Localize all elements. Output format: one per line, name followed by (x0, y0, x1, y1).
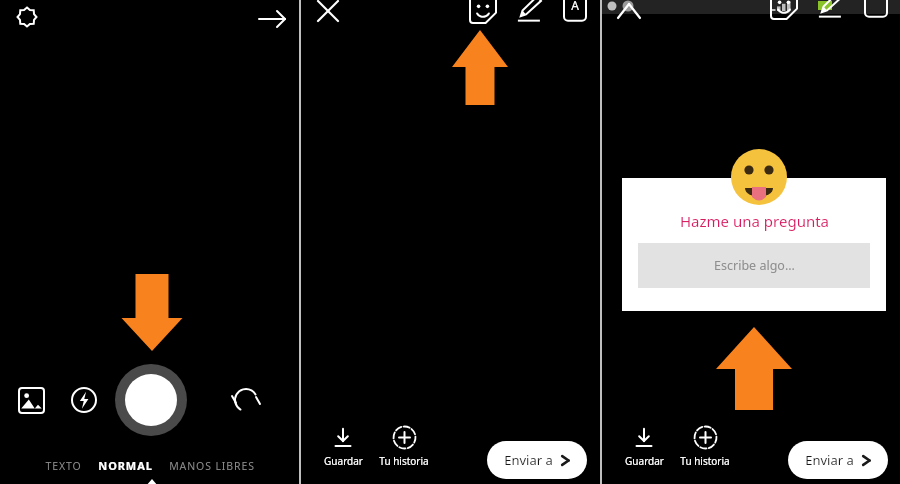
button[interactable]: Tu historia (672, 425, 738, 468)
staticText: Escribe algo... (714, 257, 795, 274)
button[interactable]: Capture (115, 364, 187, 436)
staticText: Hazme una pregunta (680, 211, 829, 231)
button[interactable]: Flash (66, 382, 102, 418)
staticText: Guardar (625, 454, 664, 468)
button[interactable]: Close (311, 0, 345, 28)
button[interactable]: Text (559, 0, 591, 24)
button[interactable]: Enviar a (487, 441, 587, 479)
staticText: MANOS LIBRES (169, 459, 255, 473)
button[interactable]: Guardar (616, 427, 672, 468)
staticText: TEXTO (45, 459, 82, 473)
button[interactable]: Switch camera (228, 382, 264, 418)
button[interactable]: Text (860, 0, 892, 20)
button[interactable]: NORMAL (90, 455, 161, 476)
staticText: Enviar a (805, 451, 854, 469)
button[interactable]: Next (255, 2, 289, 36)
button[interactable]: Gallery (13, 382, 49, 418)
button[interactable]: Guardar (315, 427, 371, 468)
staticText: Enviar a (504, 451, 553, 469)
button[interactable]: Draw (815, 0, 847, 20)
button[interactable]: Tu historia (371, 425, 437, 468)
staticText: Tu historia (379, 454, 429, 468)
staticText: Tu historia (680, 454, 730, 468)
button[interactable]: MANOS LIBRES (161, 456, 263, 476)
button[interactable]: Settings (12, 2, 42, 32)
button[interactable]: Close (612, 0, 644, 24)
staticText: Guardar (324, 454, 363, 468)
button[interactable]: Escribe algo... (638, 243, 870, 288)
button[interactable]: TEXTO (37, 456, 90, 476)
staticText: A (571, 0, 579, 13)
button[interactable]: Enviar a (788, 441, 888, 479)
button[interactable]: Hazme una pregunta (622, 178, 886, 311)
staticText: NORMAL (98, 458, 153, 473)
button[interactable]: Stickers (465, 0, 497, 24)
button[interactable]: Draw (514, 0, 546, 24)
button[interactable]: Stickers (766, 0, 798, 20)
